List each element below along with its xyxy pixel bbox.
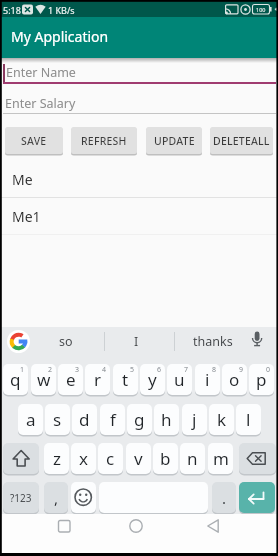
button[interactable]: o <box>222 364 247 395</box>
staticText: 5:18 <box>3 4 21 16</box>
staticText: 0 <box>266 365 271 375</box>
button[interactable]: , <box>44 482 68 513</box>
staticText: ?123 <box>10 491 32 505</box>
button[interactable] <box>3 443 39 474</box>
button[interactable]: e <box>58 364 83 395</box>
staticText: i <box>205 368 210 391</box>
staticText: a <box>26 408 36 431</box>
button[interactable]: r <box>85 364 110 395</box>
staticText: UPDATE <box>154 134 195 148</box>
button[interactable] <box>239 482 275 513</box>
staticText: r <box>94 368 102 391</box>
button[interactable]: n <box>180 443 205 474</box>
staticText: thanks <box>193 333 233 350</box>
staticText: b <box>160 447 171 470</box>
staticText: Enter Name <box>6 64 76 81</box>
staticText: t <box>122 368 129 391</box>
button[interactable] <box>0 60 278 86</box>
button[interactable]: c <box>98 443 123 474</box>
button[interactable]: so <box>46 327 86 356</box>
staticText: d <box>79 408 90 431</box>
button[interactable] <box>0 161 278 198</box>
button[interactable]: h <box>154 404 179 435</box>
button[interactable]: p <box>249 364 274 395</box>
button[interactable]: d <box>72 404 97 435</box>
button[interactable]: b <box>153 443 178 474</box>
button[interactable]: x <box>71 443 96 474</box>
button[interactable] <box>248 329 266 354</box>
staticText: e <box>66 368 76 391</box>
button[interactable]: UPDATE <box>146 127 202 154</box>
staticText: x <box>79 447 88 470</box>
staticText: 6 <box>157 365 162 375</box>
button[interactable]: j <box>182 404 207 435</box>
button[interactable]: i <box>195 364 220 395</box>
staticText: Me1 <box>12 207 41 226</box>
staticText: z <box>53 447 61 470</box>
button[interactable]: m <box>208 443 233 474</box>
staticText: u <box>174 368 185 391</box>
staticText: REFRESH <box>81 134 127 148</box>
staticText: 1 KB/s <box>48 4 75 16</box>
staticText: so <box>59 333 73 350</box>
staticText: 4 <box>102 365 107 375</box>
button[interactable]: REFRESH <box>71 127 137 154</box>
staticText: , <box>54 488 59 508</box>
staticText: 7 <box>184 365 189 375</box>
button[interactable] <box>239 443 276 474</box>
button[interactable]: l <box>236 404 261 435</box>
button[interactable]: DELETEALL <box>210 127 273 154</box>
button[interactable]: . <box>212 482 236 513</box>
button[interactable]: k <box>209 404 234 435</box>
staticText: SAVE <box>21 134 47 148</box>
staticText: Enter Salary <box>5 95 76 112</box>
button[interactable]: u <box>167 364 192 395</box>
staticText: y <box>148 368 157 391</box>
staticText: 3 <box>75 365 80 375</box>
button[interactable] <box>0 90 278 116</box>
staticText: Me <box>12 170 33 189</box>
button[interactable]: q <box>3 364 28 395</box>
button[interactable]: y <box>140 364 165 395</box>
staticText: l <box>246 408 251 431</box>
staticText: 100 <box>256 6 266 13</box>
button[interactable] <box>7 330 30 353</box>
button[interactable]: s <box>45 404 70 435</box>
button[interactable] <box>0 198 278 235</box>
button[interactable] <box>202 514 226 538</box>
button[interactable]: w <box>31 364 56 395</box>
button[interactable]: t <box>113 364 138 395</box>
staticText: 1 <box>20 365 25 375</box>
staticText: 5 <box>130 365 135 375</box>
staticText: k <box>217 408 227 431</box>
staticText: f <box>110 408 116 431</box>
button[interactable] <box>71 482 96 513</box>
staticText: s <box>53 408 62 431</box>
staticText: DELETEALL <box>213 134 270 148</box>
button[interactable]: f <box>100 404 125 435</box>
staticText: m <box>213 447 229 470</box>
button[interactable] <box>52 514 76 538</box>
staticText: g <box>134 408 145 431</box>
staticText: . <box>222 488 227 508</box>
button[interactable]: z <box>44 443 69 474</box>
staticText: 8 <box>212 365 217 375</box>
staticText: I <box>134 333 139 350</box>
button[interactable]: ?123 <box>3 482 39 513</box>
staticText: q <box>10 368 21 391</box>
button[interactable]: thanks <box>192 327 234 356</box>
button[interactable] <box>124 514 148 538</box>
staticText: h <box>161 408 172 431</box>
staticText: p <box>256 368 267 391</box>
staticText: 9 <box>239 365 244 375</box>
staticText: o <box>229 368 240 391</box>
button[interactable]: SAVE <box>5 127 63 154</box>
staticText: c <box>106 447 115 470</box>
button[interactable]: a <box>18 404 43 435</box>
staticText: My Application <box>11 27 109 46</box>
button[interactable]: v <box>126 443 151 474</box>
staticText: w <box>37 368 51 391</box>
button[interactable]: I <box>116 327 156 356</box>
button[interactable]: g <box>127 404 152 435</box>
